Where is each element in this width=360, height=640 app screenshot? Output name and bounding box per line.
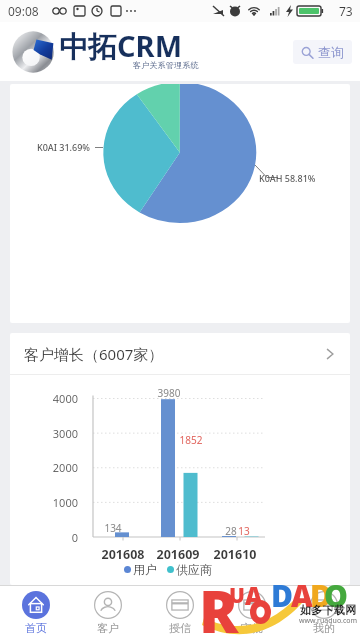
button[interactable]: 查询 xyxy=(293,40,352,64)
staticText: D xyxy=(310,575,333,616)
staticText: 201610 xyxy=(205,546,265,563)
staticText: 1000 xyxy=(38,495,78,510)
button[interactable]: 审批 xyxy=(216,586,288,640)
staticText: 我的 xyxy=(313,621,335,635)
staticText: 客户关系管理系统 xyxy=(133,60,199,70)
staticText: K0AH 58.81% xyxy=(259,172,316,184)
staticText: 134 xyxy=(93,521,133,535)
staticText: D xyxy=(271,575,294,616)
button[interactable]: 首页 xyxy=(0,586,72,640)
staticText: 客户 xyxy=(97,621,119,635)
staticText: 28 xyxy=(211,524,251,538)
staticText: 用户 xyxy=(133,562,157,577)
staticText: 201609 xyxy=(148,546,208,563)
staticText: R xyxy=(199,571,239,635)
button[interactable]: 我的 xyxy=(288,586,360,640)
staticText: 审批 xyxy=(241,621,263,635)
staticText: 首页 xyxy=(25,621,47,635)
staticText: U xyxy=(229,581,245,610)
staticText: 2000 xyxy=(38,460,78,475)
staticText: 供应商 xyxy=(176,562,212,577)
staticText: K0AI 31.69% xyxy=(37,141,90,153)
staticText: 0 xyxy=(38,530,78,545)
staticText: 73 xyxy=(339,3,353,19)
staticText: 4000 xyxy=(38,391,78,406)
button[interactable]: 客户 xyxy=(72,586,144,640)
staticText: O xyxy=(324,575,348,616)
staticText: www.ruaduo.com xyxy=(299,616,358,626)
staticText: 1852 xyxy=(171,433,211,447)
staticText: 客户增长（6007家） xyxy=(24,344,164,364)
staticText: 查询 xyxy=(318,44,344,60)
staticText: 如多下载网 xyxy=(300,603,357,617)
button[interactable]: 客户增长（6007家） xyxy=(10,333,350,374)
staticText: 13 xyxy=(224,524,264,538)
staticText: A xyxy=(245,579,263,612)
button[interactable]: 授信 xyxy=(144,586,216,640)
staticText: 3000 xyxy=(38,426,78,441)
staticText: A xyxy=(291,575,313,616)
staticText: 中拓CRM xyxy=(59,26,182,66)
staticText: 3980 xyxy=(149,386,189,400)
staticText: 09:08 xyxy=(8,3,39,19)
staticText: 201608 xyxy=(93,546,153,563)
staticText: 授信 xyxy=(169,621,191,635)
